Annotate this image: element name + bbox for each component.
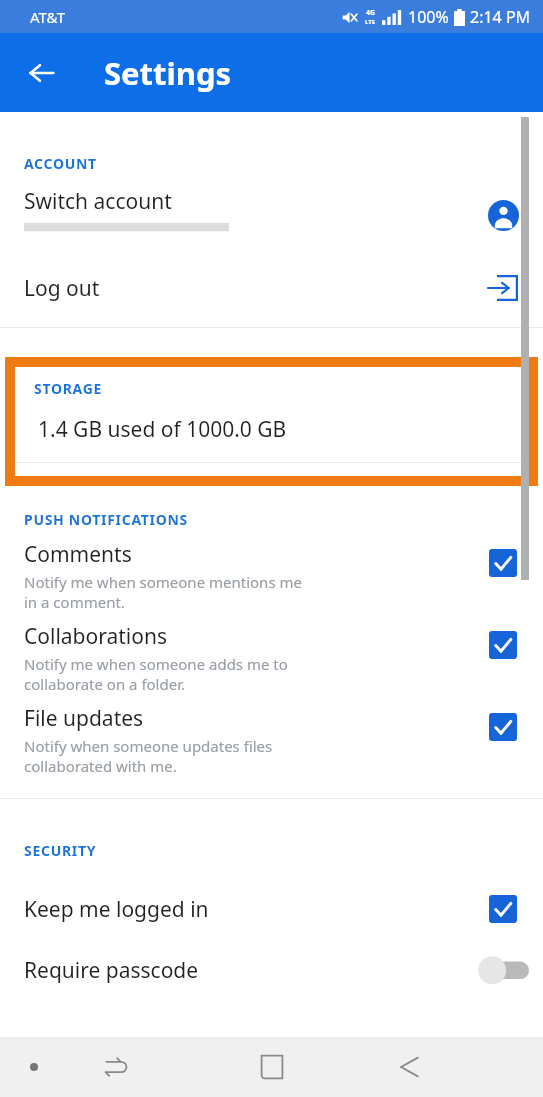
staticText: Comments: [24, 540, 132, 569]
staticText: 4G: [366, 8, 376, 18]
staticText: Notify me when someone adds me to collab…: [24, 654, 288, 694]
staticText: PUSH NOTIFICATIONS: [24, 510, 189, 529]
staticText: Collaborations: [24, 622, 167, 651]
button[interactable]: Back: [14, 45, 70, 101]
button[interactable]: Menu: [6, 1037, 62, 1097]
staticText: 1.4 GB used of 1000.0 GB: [38, 415, 287, 444]
button[interactable]: Switch account: [0, 185, 543, 257]
staticText: File updates: [24, 704, 144, 733]
button[interactable]: STORAGE: [15, 367, 528, 476]
button[interactable]: Back: [377, 1037, 443, 1097]
staticText: LTE: [365, 18, 376, 26]
staticText: 2:14 PM: [470, 6, 531, 28]
button[interactable]: Log out: [0, 257, 543, 319]
staticText: Keep me logged in: [24, 895, 463, 924]
staticText: Require passcode: [24, 956, 463, 985]
button[interactable]: Comments: [0, 540, 543, 622]
staticText: 100%: [408, 6, 449, 28]
button[interactable]: Home: [239, 1037, 305, 1097]
button[interactable]: Require passcode: [0, 940, 543, 1000]
button[interactable]: Recents: [84, 1037, 150, 1097]
staticText: AT&T: [30, 7, 65, 27]
staticText: ACCOUNT: [24, 154, 97, 173]
staticText: Notify when someone updates files collab…: [24, 736, 273, 776]
staticText: Log out: [24, 274, 463, 303]
staticText: STORAGE: [34, 379, 103, 398]
staticText: Settings: [104, 52, 232, 94]
button[interactable]: File updates: [0, 704, 543, 786]
staticText: Notify me when someone mentions me in a …: [24, 572, 302, 612]
button[interactable]: Keep me logged in: [0, 878, 543, 940]
staticText: SECURITY: [24, 841, 97, 860]
staticText: Switch account: [24, 187, 172, 216]
button[interactable]: Collaborations: [0, 622, 543, 704]
